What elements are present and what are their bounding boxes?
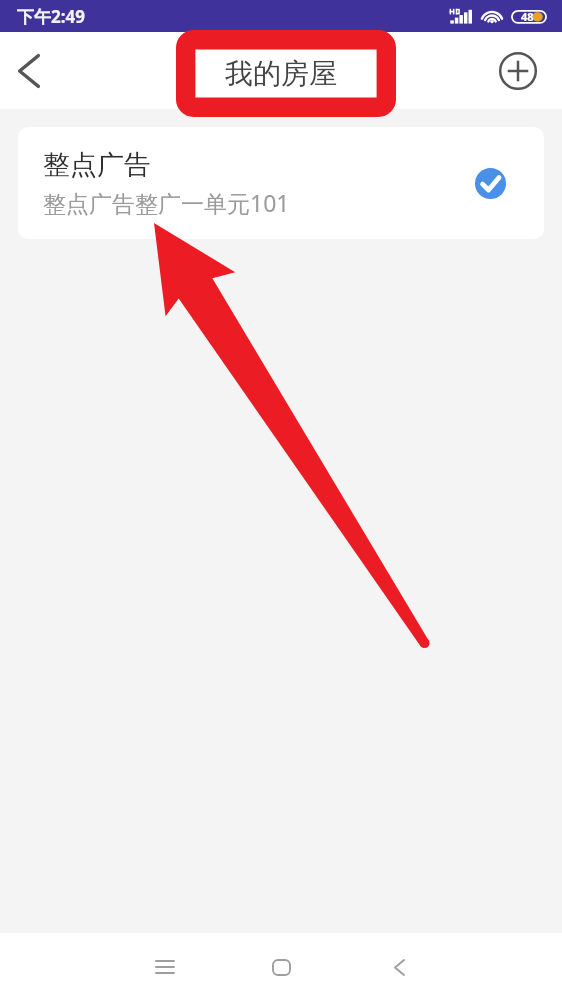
staticText: 整点广告整广一单元101 — [43, 187, 290, 218]
button[interactable]: Home — [251, 937, 311, 997]
staticText: 48 — [521, 9, 534, 24]
button[interactable]: Recent apps — [135, 937, 195, 997]
button[interactable]: 整点广告 — [18, 127, 544, 239]
staticText: 下午2:49 — [17, 5, 85, 28]
staticText: 整点广告 — [43, 148, 151, 182]
button[interactable]: Back — [369, 937, 429, 997]
staticText: 我的房屋 — [225, 56, 337, 91]
button[interactable]: Back — [0, 36, 58, 106]
button[interactable]: Add — [488, 36, 548, 106]
